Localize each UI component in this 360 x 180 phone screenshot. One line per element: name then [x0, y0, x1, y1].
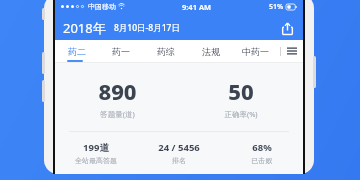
staticText: 全站最高答题 — [75, 156, 117, 165]
staticText: 24 / 5456 — [158, 141, 200, 154]
button[interactable]: Share — [277, 18, 297, 38]
staticText: 51% — [269, 2, 284, 12]
staticText: 199道 — [83, 141, 109, 154]
staticText: 中国移动 — [88, 2, 116, 11]
staticText: 法规 — [202, 46, 220, 57]
staticText: 答题量(道) — [100, 109, 135, 119]
button[interactable]: 68% — [220, 132, 303, 174]
staticText: 药综 — [157, 46, 175, 57]
button[interactable]: 药一 — [99, 40, 143, 62]
staticText: 2018年 — [63, 19, 106, 37]
button[interactable]: 890 — [55, 63, 179, 131]
button[interactable]: 药综 — [143, 40, 188, 62]
staticText: 68% — [252, 141, 272, 154]
staticText: 药二 — [68, 46, 86, 57]
staticText: 药一 — [112, 46, 130, 57]
button[interactable]: 24 / 5456 — [137, 132, 220, 174]
staticText: 9:41 AM — [182, 2, 211, 12]
staticText: 890 — [98, 76, 137, 106]
button[interactable]: 药二 — [55, 40, 99, 62]
staticText: 排名 — [172, 156, 186, 165]
button[interactable]: 中药一 — [233, 40, 278, 62]
button[interactable]: 法规 — [188, 40, 233, 62]
button[interactable]: 50 — [179, 63, 303, 131]
staticText: 中药一 — [242, 46, 269, 57]
button[interactable]: Menu — [281, 40, 303, 62]
staticText: 8月10日-8月17日 — [114, 22, 180, 34]
staticText: 50 — [228, 76, 254, 106]
button[interactable]: 199道 — [55, 132, 137, 174]
staticText: 正确率(%) — [224, 109, 258, 119]
staticText: 已击败 — [251, 156, 272, 165]
